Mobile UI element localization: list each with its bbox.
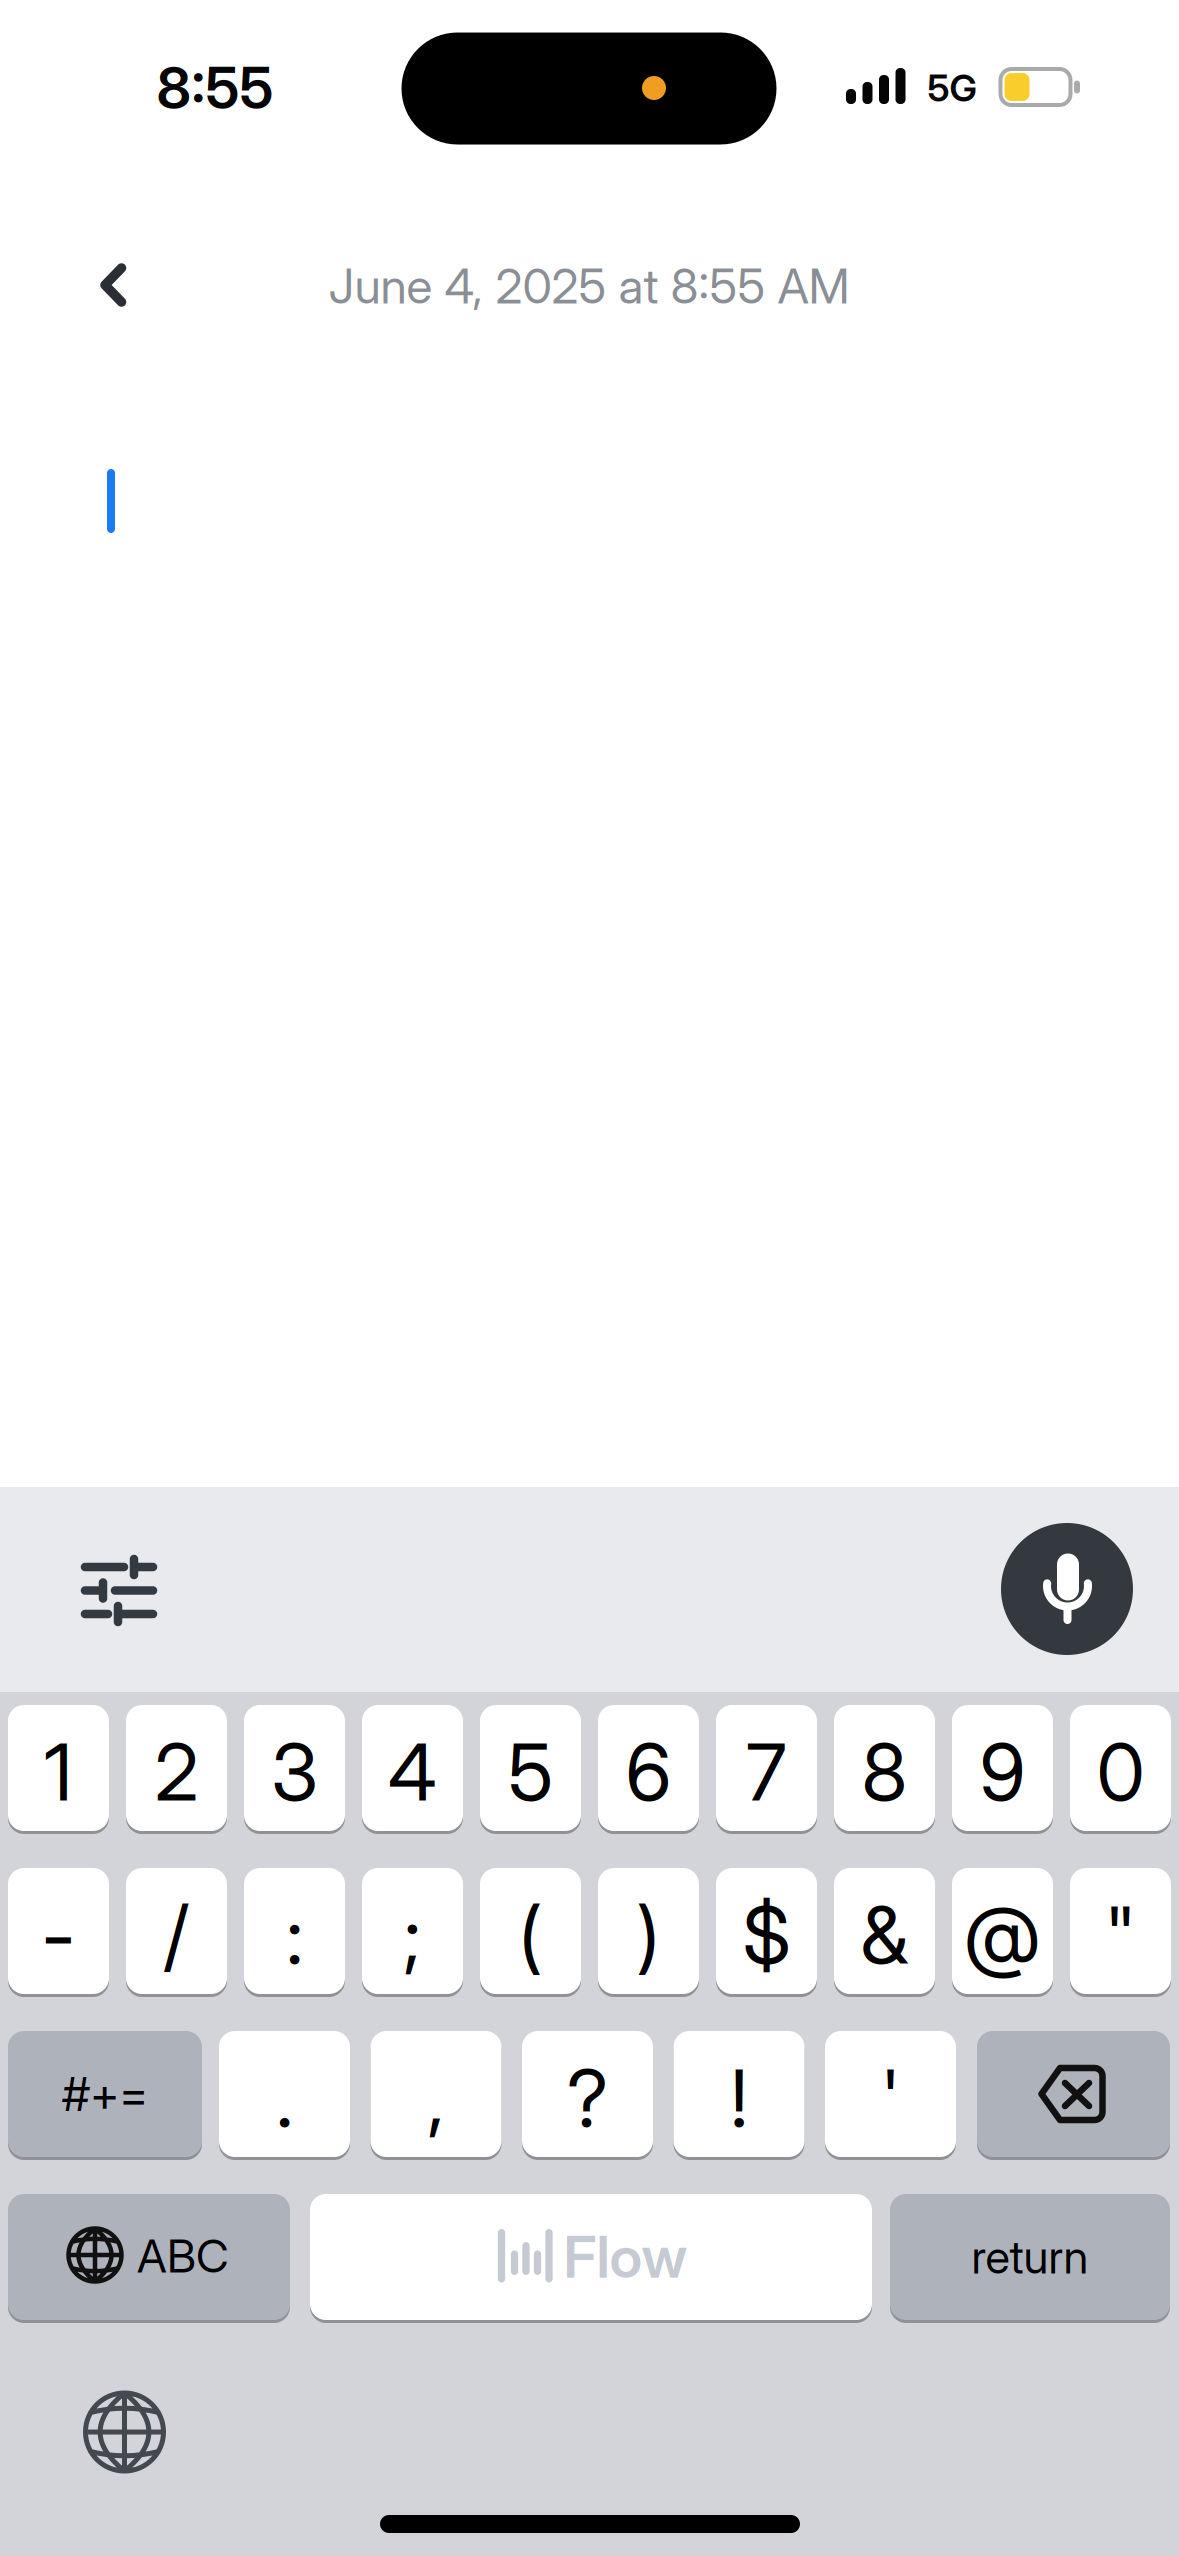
staticText: 2 — [154, 1724, 198, 1820]
staticText: ) — [636, 1887, 660, 1983]
staticText: @ — [964, 1887, 1041, 1983]
staticText: ABC — [137, 2229, 229, 2283]
button[interactable]: Delete — [977, 2029, 1170, 2158]
button[interactable]: Keyboard settings — [68, 1540, 168, 1640]
staticText: 8:55 — [156, 53, 273, 123]
staticText: Flow — [563, 2222, 687, 2292]
staticText: . — [276, 2050, 293, 2146]
button[interactable]: ; — [362, 1866, 463, 1995]
button[interactable]: 1 — [8, 1703, 109, 1832]
button[interactable]: 5 — [480, 1703, 581, 1832]
button[interactable]: Next keyboard — [74, 2382, 174, 2482]
button[interactable]: 0 — [1070, 1703, 1171, 1832]
staticText: " — [1104, 1887, 1136, 1983]
staticText: ! — [730, 2050, 747, 2146]
button[interactable]: Back — [69, 241, 157, 329]
button[interactable]: 2 — [126, 1703, 227, 1832]
button[interactable]: " — [1070, 1866, 1171, 1995]
staticText: / — [163, 1887, 189, 1983]
button[interactable]: Switch keyboard to letters — [8, 2192, 290, 2321]
button[interactable]: , — [370, 2029, 501, 2158]
staticText: & — [860, 1887, 908, 1983]
button[interactable]: ? — [522, 2029, 653, 2158]
staticText: 5G — [927, 65, 976, 111]
staticText: 4 — [388, 1724, 437, 1820]
button[interactable]: 6 — [598, 1703, 699, 1832]
staticText: - — [41, 1887, 75, 1983]
staticText: : — [286, 1887, 303, 1983]
staticText: return — [971, 2230, 1088, 2284]
staticText: ; — [403, 1887, 421, 1983]
button[interactable]: ) — [598, 1866, 699, 1995]
button[interactable]: 3 — [244, 1703, 345, 1832]
button[interactable]: Symbols — [8, 2029, 202, 2158]
button[interactable]: / — [126, 1866, 227, 1995]
button[interactable]: 4 — [362, 1703, 463, 1832]
button[interactable]: 7 — [716, 1703, 817, 1832]
staticText: $ — [742, 1887, 790, 1983]
button[interactable]: @ — [952, 1866, 1053, 1995]
staticText: ' — [880, 2050, 900, 2146]
staticText: 6 — [625, 1724, 671, 1820]
button[interactable]: Dictate — [1001, 1523, 1133, 1655]
staticText: #+= — [62, 2066, 148, 2122]
button[interactable]: & — [834, 1866, 935, 1995]
staticText: 9 — [979, 1724, 1025, 1820]
button[interactable]: 8 — [834, 1703, 935, 1832]
button[interactable]: 9 — [952, 1703, 1053, 1832]
button[interactable]: $ — [716, 1866, 817, 1995]
staticText: 5 — [508, 1724, 553, 1820]
staticText: 7 — [746, 1724, 787, 1820]
staticText: ? — [567, 2050, 608, 2146]
staticText: ( — [518, 1887, 542, 1983]
button[interactable]: ' — [825, 2029, 956, 2158]
button[interactable]: ! — [673, 2029, 804, 2158]
staticText: 0 — [1096, 1724, 1144, 1820]
button[interactable]: . — [219, 2029, 350, 2158]
button[interactable]: ( — [480, 1866, 581, 1995]
staticText: , — [427, 2050, 444, 2146]
staticText: June 4, 2025 at 8:55 AM — [328, 257, 849, 315]
staticText: 1 — [44, 1724, 73, 1820]
button[interactable]: - — [8, 1866, 109, 1995]
staticText: 8 — [861, 1724, 907, 1820]
button[interactable]: return — [890, 2192, 1170, 2321]
button[interactable]: : — [244, 1866, 345, 1995]
staticText: 3 — [271, 1724, 318, 1820]
button[interactable]: Space — [310, 2192, 872, 2321]
